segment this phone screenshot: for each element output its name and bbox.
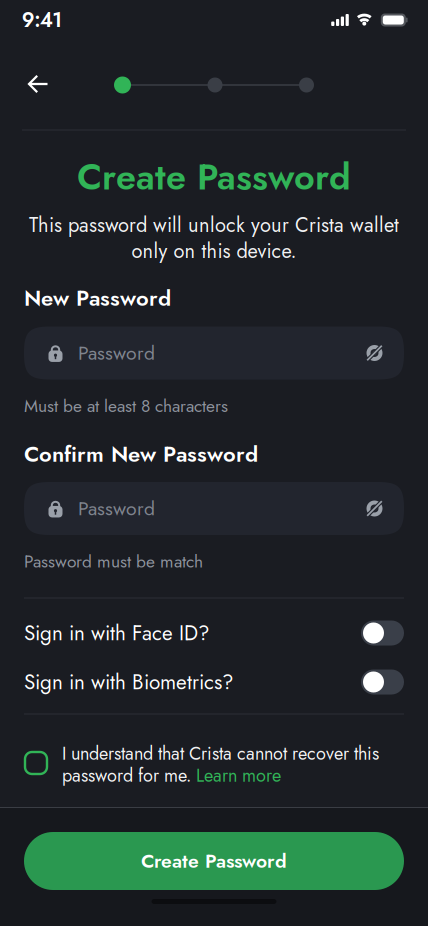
button[interactable]: Password — [24, 326, 404, 379]
staticText: I understand that Crista cannot recover … — [62, 740, 379, 766]
staticText: Create Password — [77, 151, 351, 203]
staticText: Confirm New Password — [24, 438, 258, 470]
staticText: Password — [78, 339, 155, 367]
button[interactable]: Password — [24, 482, 404, 535]
staticText: This password will unlock your Crista wa… — [29, 210, 399, 239]
staticText: Learn more — [196, 762, 281, 788]
staticText: Password — [78, 494, 155, 522]
staticText: only on this device. — [131, 236, 296, 265]
button[interactable]: Learn more — [196, 762, 281, 788]
staticText: Sign in with Face ID? — [24, 618, 210, 648]
staticText: Must be at least 8 characters — [24, 393, 228, 418]
button[interactable]: I understand — [25, 752, 47, 774]
button[interactable]: Sign in with Biometrics — [361, 669, 404, 694]
button[interactable]: Sign in with Face ID — [361, 620, 404, 645]
staticText: New Password — [24, 282, 171, 314]
button[interactable]: Back — [20, 67, 56, 101]
button[interactable]: Show password — [364, 498, 404, 519]
button[interactable]: Show password — [364, 342, 404, 363]
staticText: password for me. — [62, 762, 196, 788]
button[interactable]: Create Password — [24, 832, 404, 890]
staticText: 9:41 — [22, 5, 62, 34]
staticText: Sign in with Biometrics? — [24, 667, 234, 697]
staticText: Password must be match — [24, 549, 203, 574]
staticText: Create Password — [141, 847, 287, 875]
